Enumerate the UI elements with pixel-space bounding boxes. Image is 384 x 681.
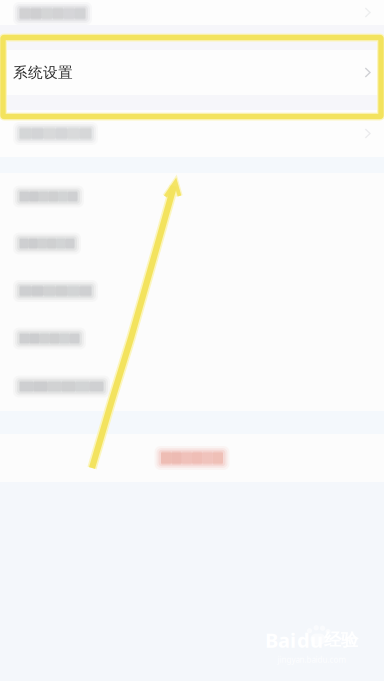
staticText: 系统设置 <box>13 63 73 81</box>
button[interactable]: 系统设置 <box>0 50 384 95</box>
button[interactable] <box>0 434 384 482</box>
button[interactable] <box>0 0 384 25</box>
button[interactable] <box>0 267 384 315</box>
staticText: du <box>297 627 323 653</box>
button[interactable] <box>0 173 384 220</box>
button[interactable] <box>0 220 384 267</box>
button[interactable] <box>0 315 384 362</box>
button[interactable] <box>0 362 384 411</box>
button[interactable] <box>0 110 384 157</box>
staticText: 经验 <box>324 629 358 651</box>
staticText: Bai <box>265 627 296 653</box>
